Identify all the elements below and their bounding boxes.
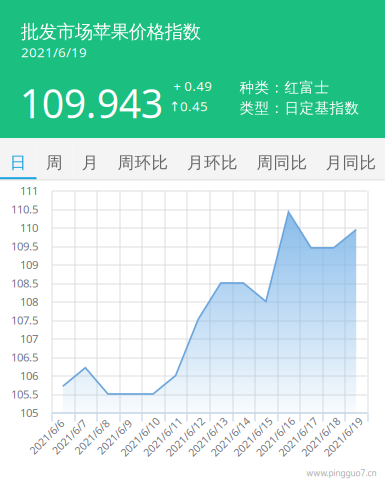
staticText: 2021/6/19 xyxy=(318,429,368,444)
staticText: 2021/6/8 xyxy=(70,429,114,444)
staticText: 111 xyxy=(20,183,38,198)
staticText: 2021/6/12 xyxy=(160,429,210,444)
staticText: 月同比 xyxy=(325,152,376,173)
staticText: 2021/6/6 xyxy=(25,429,69,444)
staticText: 周 xyxy=(46,152,63,173)
staticText: 109.5 xyxy=(11,238,38,254)
staticText: 107 xyxy=(20,331,38,346)
staticText: 2021/6/18 xyxy=(296,429,346,444)
staticText: 2021/6/9 xyxy=(92,429,136,444)
staticText: 2021/6/19 xyxy=(21,43,87,61)
staticText: 2021/6/17 xyxy=(273,429,323,444)
staticText: 105 xyxy=(20,405,38,420)
staticText: 2021/6/7 xyxy=(47,429,91,444)
button[interactable]: 月环比 xyxy=(178,138,247,179)
button[interactable]: 日 xyxy=(0,138,37,179)
staticText: 周环比 xyxy=(117,152,168,173)
button[interactable]: 周 xyxy=(37,138,72,179)
staticText: 月 xyxy=(82,152,99,173)
button[interactable]: 月 xyxy=(72,138,108,179)
staticText: 107.5 xyxy=(11,312,38,328)
staticText: ↑0.45 xyxy=(169,97,208,115)
staticText: 109.943 xyxy=(20,76,163,130)
staticText: 2021/6/11 xyxy=(138,429,188,444)
staticText: 周同比 xyxy=(256,152,307,173)
staticText: 2021/6/14 xyxy=(205,429,255,444)
staticText: 106.5 xyxy=(11,349,38,365)
staticText: 110 xyxy=(20,220,38,235)
staticText: 种类：红富士 xyxy=(239,78,329,97)
staticText: 日 xyxy=(10,152,27,173)
staticText: 2021/6/15 xyxy=(228,429,278,444)
staticText: 月环比 xyxy=(187,152,238,173)
staticText: www.pingguo7.cn xyxy=(307,467,377,479)
staticText: 110.5 xyxy=(11,201,38,217)
staticText: + 0.49 xyxy=(173,77,212,95)
staticText: 批发市场苹果价格指数 xyxy=(21,20,201,43)
staticText: 109 xyxy=(20,257,38,272)
staticText: 2021/6/16 xyxy=(250,429,300,444)
staticText: 108.5 xyxy=(11,275,38,291)
staticText: 106 xyxy=(20,368,38,383)
button[interactable]: 周同比 xyxy=(247,138,317,179)
staticText: 108 xyxy=(20,294,38,309)
button[interactable]: 月同比 xyxy=(317,138,385,179)
staticText: 2021/6/13 xyxy=(183,429,233,444)
button[interactable]: 周环比 xyxy=(108,138,178,179)
staticText: 105.5 xyxy=(11,386,38,402)
staticText: 类型：日定基指数 xyxy=(239,99,359,117)
staticText: 2021/6/10 xyxy=(115,429,165,444)
